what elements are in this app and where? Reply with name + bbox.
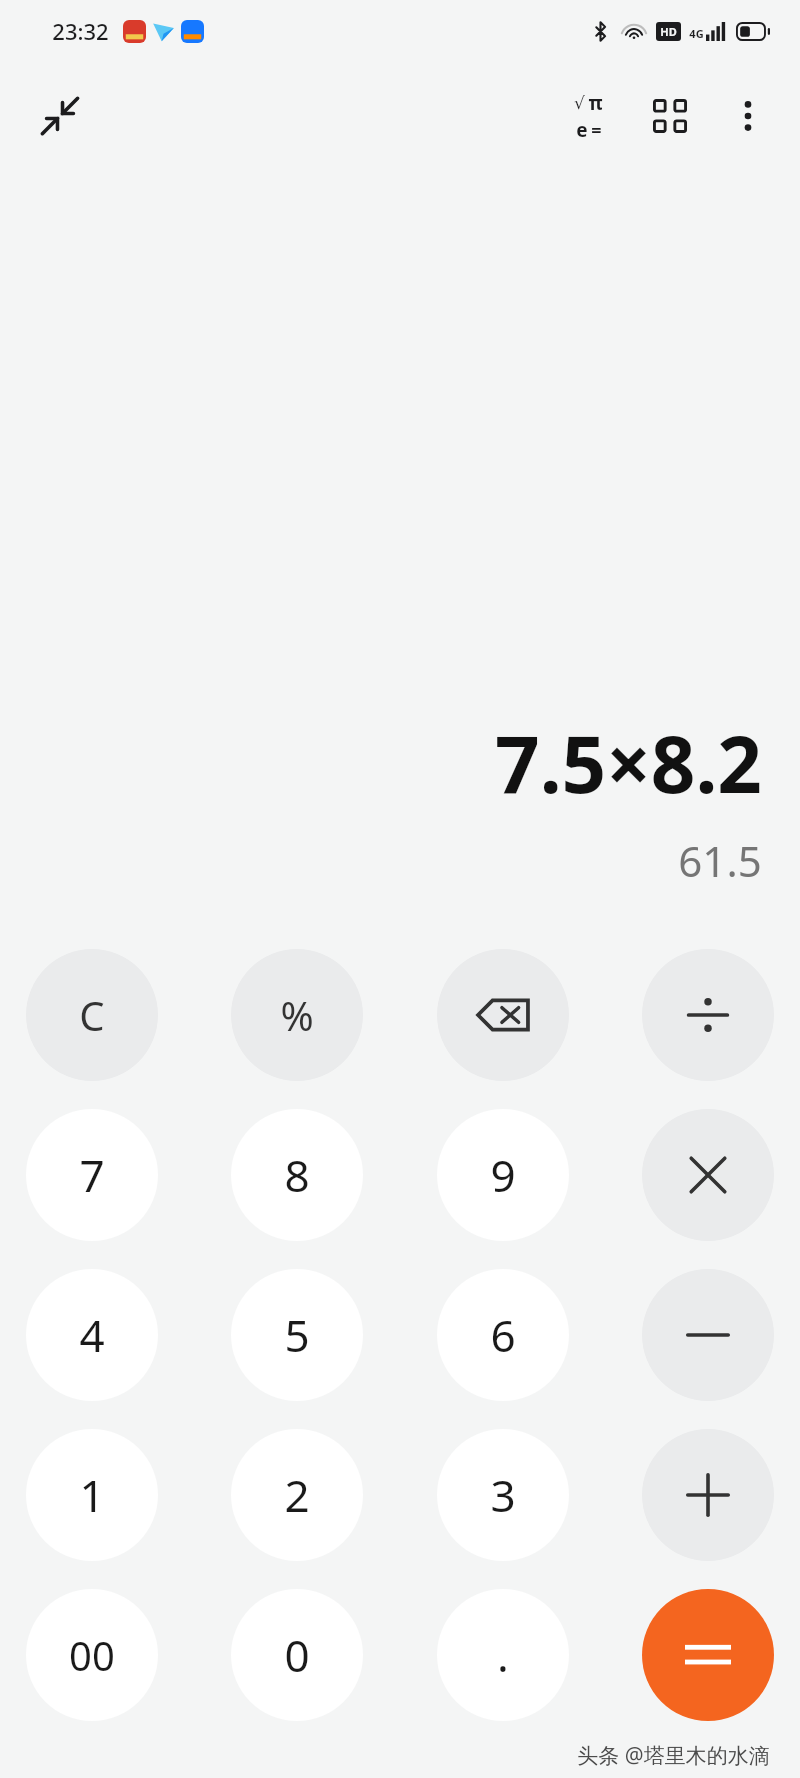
button[interactable]: 8 — [231, 1109, 363, 1241]
button[interactable]: . — [437, 1589, 569, 1721]
staticText: 00 — [69, 1628, 115, 1682]
staticText: 0 — [284, 1625, 310, 1685]
button[interactable]: % — [231, 949, 363, 1081]
staticText: 7.5×8.2 — [495, 710, 762, 816]
button[interactable]: Multiply — [642, 1109, 774, 1241]
button[interactable]: Collapse — [26, 82, 94, 150]
staticText: % — [280, 988, 314, 1042]
staticText: 头条 @塔里木的水滴 — [577, 1741, 770, 1770]
staticText: 6 — [490, 1305, 516, 1365]
button[interactable]: Converters — [636, 82, 704, 150]
button[interactable]: 1 — [26, 1429, 158, 1561]
staticText: π — [588, 90, 603, 116]
button[interactable]: 7 — [26, 1109, 158, 1241]
button[interactable]: 00 — [26, 1589, 158, 1721]
button[interactable]: 2 — [231, 1429, 363, 1561]
staticText: 2 — [284, 1465, 310, 1525]
staticText: 7 — [79, 1145, 105, 1205]
staticText: 1 — [79, 1465, 105, 1525]
staticText: 5 — [284, 1305, 310, 1365]
button[interactable]: Divide — [642, 949, 774, 1081]
staticText: e — [576, 117, 588, 143]
button[interactable]: 6 — [437, 1269, 569, 1401]
staticText: 8 — [284, 1145, 310, 1205]
staticText: 61.5 — [678, 832, 762, 889]
button[interactable]: Plus — [642, 1429, 774, 1561]
staticText: 23:32 — [52, 16, 109, 46]
button[interactable]: Equals — [642, 1589, 774, 1721]
button[interactable]: 5 — [231, 1269, 363, 1401]
staticText: C — [79, 988, 105, 1042]
staticText: 4 — [79, 1305, 105, 1365]
staticText: HD — [660, 24, 677, 39]
button[interactable]: Minus — [642, 1269, 774, 1401]
staticText: 3 — [490, 1465, 516, 1525]
button[interactable]: Backspace — [437, 949, 569, 1081]
button[interactable]: 4 — [26, 1269, 158, 1401]
button[interactable]: 0 — [231, 1589, 363, 1721]
staticText: √ — [574, 93, 585, 113]
button[interactable]: 3 — [437, 1429, 569, 1561]
staticText: = — [591, 118, 602, 143]
staticText: 9 — [490, 1145, 516, 1205]
button[interactable]: More options — [714, 82, 782, 150]
staticText: . — [497, 1625, 509, 1685]
button[interactable]: Scientific mode — [554, 82, 622, 150]
button[interactable]: 9 — [437, 1109, 569, 1241]
staticText: 4G — [689, 26, 704, 41]
button[interactable]: C — [26, 949, 158, 1081]
